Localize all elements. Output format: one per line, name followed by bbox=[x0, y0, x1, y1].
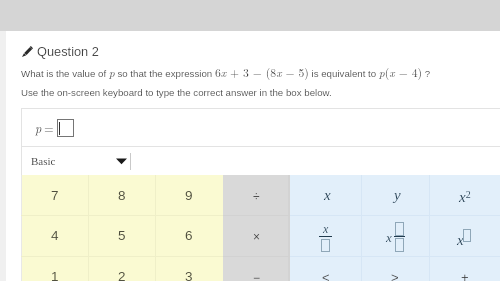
staticText: 6 bbox=[185, 228, 193, 243]
button[interactable]: < bbox=[290, 256, 361, 281]
button[interactable]: x bbox=[290, 215, 361, 256]
button[interactable]: x bbox=[429, 215, 500, 256]
staticText: − bbox=[253, 271, 261, 281]
button[interactable]: ÷ bbox=[223, 175, 290, 215]
staticText: 7 bbox=[51, 188, 59, 203]
button[interactable]: 1 bbox=[21, 256, 88, 281]
button[interactable]: x bbox=[361, 215, 429, 256]
button[interactable]: x2 bbox=[429, 175, 500, 215]
staticText: Use the on-screen keyboard to type the c… bbox=[21, 87, 332, 98]
button[interactable]: > bbox=[361, 256, 429, 281]
staticText: x bbox=[324, 187, 331, 204]
staticText: x bbox=[386, 230, 392, 244]
other: Change keypad bbox=[116, 157, 127, 165]
button[interactable]: x bbox=[290, 175, 361, 215]
button[interactable]: × bbox=[223, 215, 290, 256]
button[interactable]: 8 bbox=[88, 175, 155, 215]
staticText: 3 bbox=[185, 269, 193, 281]
button[interactable]: 6 bbox=[155, 215, 223, 256]
button[interactable]: 3 bbox=[155, 256, 223, 281]
staticText: < bbox=[322, 270, 330, 281]
button[interactable]: Edit bbox=[21, 44, 99, 58]
button[interactable]: 9 bbox=[155, 175, 223, 215]
staticText: p bbox=[35, 119, 42, 137]
staticText: ÷ bbox=[253, 190, 260, 203]
button[interactable]: 5 bbox=[88, 215, 155, 256]
staticText: 1 bbox=[51, 269, 59, 281]
staticText: 8 bbox=[118, 188, 126, 203]
staticText: 2 bbox=[118, 269, 126, 281]
staticText: + bbox=[461, 270, 469, 281]
button[interactable]: 4 bbox=[21, 215, 88, 256]
staticText: x bbox=[323, 222, 329, 235]
staticText: > bbox=[391, 270, 399, 281]
staticText: 5 bbox=[118, 228, 126, 243]
button[interactable]: − bbox=[223, 256, 290, 281]
other: Edit bbox=[21, 45, 33, 57]
staticText: y bbox=[394, 187, 401, 204]
staticText: Question 2 bbox=[37, 44, 99, 58]
staticText: = bbox=[44, 119, 54, 137]
staticText: x bbox=[457, 232, 464, 249]
staticText: × bbox=[253, 230, 261, 243]
button[interactable]: y bbox=[361, 175, 429, 215]
button[interactable]: 7 bbox=[21, 175, 88, 215]
button[interactable]: 2 bbox=[88, 256, 155, 281]
staticText: What is the value of p so that the expre… bbox=[21, 64, 431, 81]
staticText: Basic bbox=[31, 155, 56, 167]
button[interactable]: Basic bbox=[22, 147, 130, 175]
staticText: 9 bbox=[185, 188, 193, 203]
staticText: 4 bbox=[51, 228, 59, 243]
button[interactable]: + bbox=[429, 256, 500, 281]
staticText: x2 bbox=[459, 189, 471, 206]
